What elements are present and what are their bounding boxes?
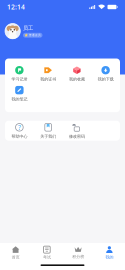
button[interactable]: 考试 [31, 243, 62, 259]
button[interactable]: 关于我们 [34, 123, 63, 139]
staticText: 我的 [105, 255, 113, 259]
staticText: 首页 [12, 255, 20, 259]
staticText: 关于我们 [40, 134, 56, 139]
button[interactable]: 我的笔记 [5, 86, 34, 102]
button[interactable]: 我的 [94, 243, 125, 259]
button[interactable]: 修改密码 [62, 123, 91, 139]
staticText: 我的收藏 [69, 77, 85, 82]
staticText: 帮助中心 [11, 134, 27, 139]
staticText: 修改密码 [69, 134, 85, 139]
staticText: 学习记录 [11, 77, 27, 82]
staticText: 员工 [23, 25, 33, 31]
staticText: 我的笔记 [11, 97, 27, 102]
staticText: 考试 [43, 255, 51, 259]
button[interactable]: 员工 [0, 23, 125, 39]
staticText: 12:14 [7, 3, 25, 11]
staticText: 积分榜 [72, 254, 84, 259]
button[interactable]: 我的收藏 [62, 66, 91, 82]
staticText: 普通会员 [29, 34, 41, 37]
button[interactable]: 我的证书 [34, 66, 63, 82]
staticText: ? [18, 123, 21, 132]
staticText: 我的下载 [98, 77, 114, 82]
button[interactable]: 我的下载 [91, 66, 120, 82]
button[interactable]: 学习记录 [5, 66, 34, 82]
button[interactable]: 首页 [0, 243, 31, 259]
button[interactable]: ? [5, 123, 34, 139]
staticText: 我的证书 [40, 77, 56, 82]
button[interactable]: 积分榜 [62, 243, 94, 259]
